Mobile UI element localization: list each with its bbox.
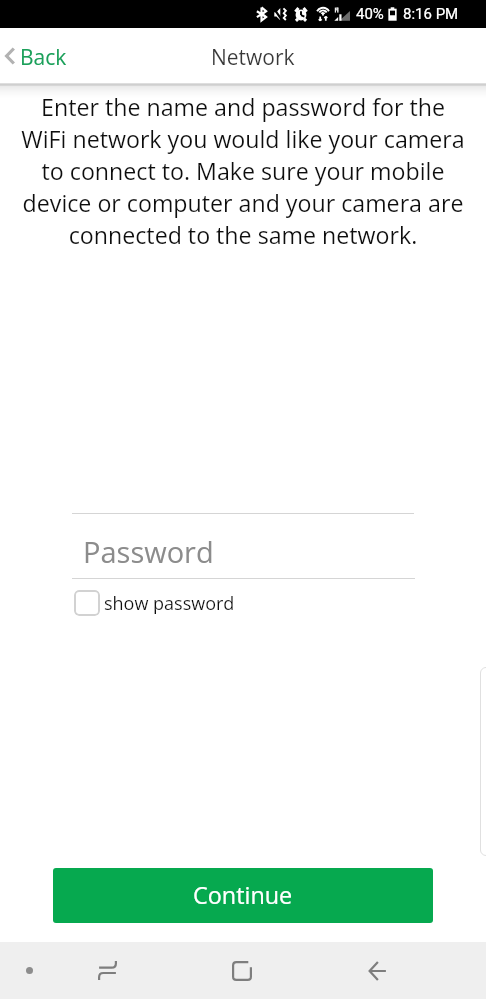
staticText: Continue: [193, 879, 293, 911]
button[interactable]: Menu: [15, 942, 43, 999]
button[interactable]: Home: [221, 942, 263, 999]
staticText: show password: [104, 591, 235, 616]
staticText: Password: [83, 532, 214, 571]
button[interactable]: Recent apps: [86, 942, 128, 999]
button[interactable]: Network name: [72, 469, 414, 514]
staticText: 8:16 PM: [403, 5, 459, 23]
button[interactable]: Password: [72, 514, 415, 579]
staticText: Enter the name and password for the WiFi…: [17, 91, 469, 251]
staticText: 40%: [356, 5, 384, 23]
button[interactable]: show password: [74, 590, 235, 616]
button[interactable]: Back: [5, 41, 67, 70]
staticText: Back: [20, 43, 67, 72]
button[interactable]: Continue: [53, 868, 433, 923]
staticText: Network: [211, 43, 295, 72]
button[interactable]: Back: [356, 942, 398, 999]
